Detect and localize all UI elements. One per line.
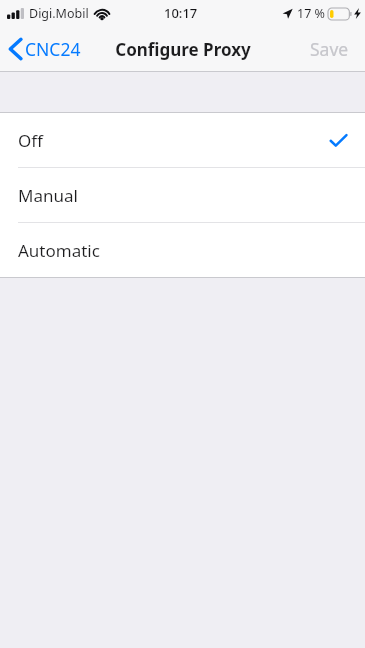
- staticText: Automatic: [18, 239, 100, 262]
- button[interactable]: Automatic: [0, 223, 365, 277]
- button[interactable]: Off: [0, 113, 365, 167]
- staticText: 17 %: [297, 5, 325, 22]
- staticText: Digi.Mobil: [29, 5, 89, 22]
- staticText: 10:17: [164, 4, 198, 22]
- staticText: Configure Proxy: [115, 38, 251, 61]
- button[interactable]: CNC24: [0, 26, 89, 72]
- staticText: Manual: [18, 184, 78, 207]
- button[interactable]: Save: [294, 26, 365, 72]
- other: Selected: [328, 130, 348, 150]
- button[interactable]: Manual: [0, 168, 365, 222]
- staticText: Off: [18, 129, 43, 152]
- staticText: Save: [310, 37, 349, 61]
- staticText: CNC24: [25, 37, 81, 61]
